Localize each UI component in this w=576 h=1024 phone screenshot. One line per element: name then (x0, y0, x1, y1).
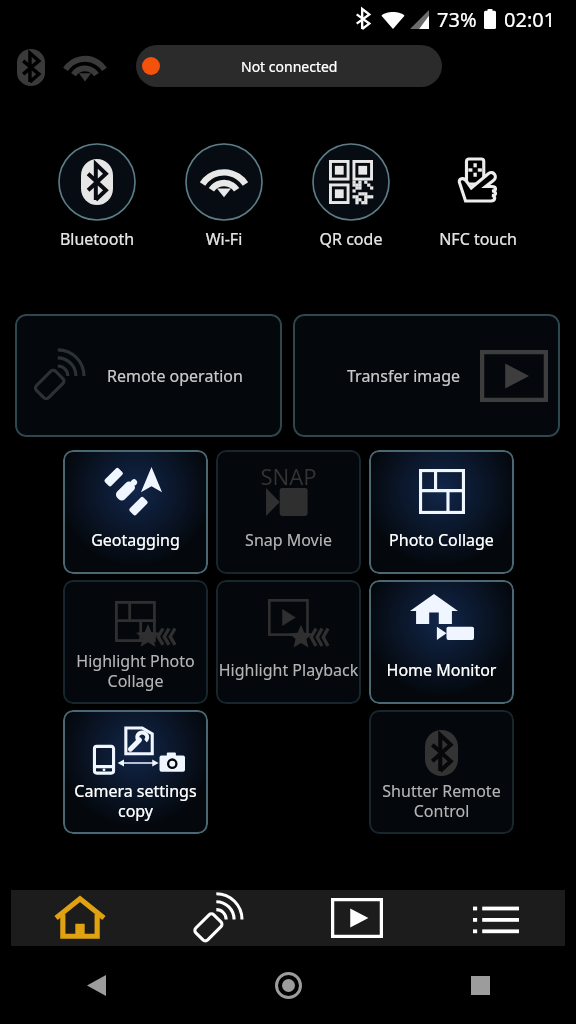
button[interactable]: Back (0, 946, 192, 1024)
button[interactable]: Photo Collage (369, 450, 514, 574)
staticText: Snap Movie (216, 529, 361, 551)
staticText: QR code (288, 228, 414, 250)
staticText: Not connected (241, 57, 338, 76)
button[interactable]: Geotagging (63, 450, 208, 574)
staticText: Wi-Fi (161, 228, 287, 250)
staticText: Shutter Remote Control (369, 780, 514, 821)
staticText: Highlight Playback (216, 659, 361, 681)
button[interactable]: Wi-Fi status (64, 48, 106, 86)
button[interactable]: Recent apps (384, 946, 576, 1024)
staticText: Highlight Photo Collage (63, 650, 208, 691)
button[interactable]: SNAP (216, 450, 361, 574)
button[interactable]: Shutter Remote Control (369, 710, 514, 834)
staticText: Photo Collage (369, 529, 514, 551)
button[interactable]: Not connected (136, 45, 442, 87)
staticText: 73% (437, 6, 477, 32)
button[interactable]: Bluetooth (34, 143, 160, 250)
staticText: Home Monitor (369, 659, 514, 681)
staticText: Remote operation (107, 365, 243, 387)
button[interactable]: Menu (426, 890, 565, 946)
staticText: Geotagging (63, 529, 208, 551)
button[interactable]: Bluetooth status (14, 48, 48, 86)
button[interactable]: Remote control (149, 890, 287, 946)
staticText: Camera settings copy (63, 780, 208, 821)
staticText: Transfer image (347, 365, 461, 387)
button[interactable]: Wi-Fi (161, 143, 287, 250)
button[interactable]: Playback (287, 890, 426, 946)
staticText: Bluetooth (34, 228, 160, 250)
button[interactable]: Camera settings copy (63, 710, 208, 834)
button[interactable]: Highlight Playback (216, 580, 361, 704)
staticText: SNAP (216, 461, 361, 491)
staticText: NFC touch (415, 228, 541, 250)
button[interactable]: Highlight Photo Collage (63, 580, 208, 704)
button[interactable]: NFC touch (415, 143, 541, 250)
staticText: 02:01 (504, 6, 556, 32)
button[interactable]: QR code (288, 143, 414, 250)
button[interactable]: Home Monitor (369, 580, 514, 704)
button[interactable]: Home (11, 890, 149, 946)
button[interactable]: Transfer image (293, 314, 560, 437)
button[interactable]: Remote operation (15, 314, 282, 437)
button[interactable]: Home (192, 946, 384, 1024)
